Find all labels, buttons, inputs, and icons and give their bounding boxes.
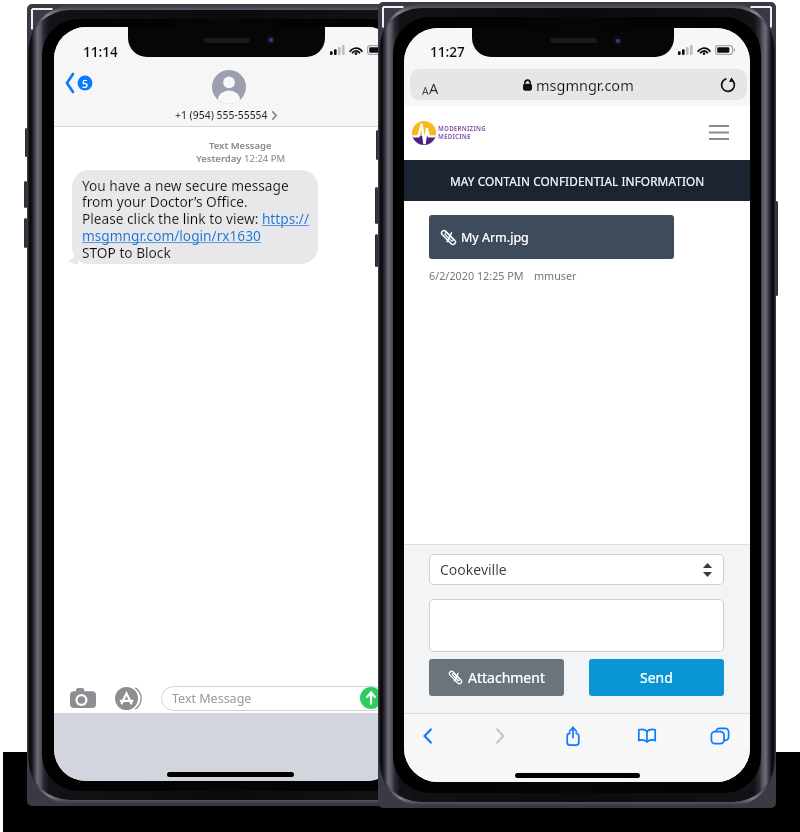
staticText: Yesterday 12:24 PM: [196, 152, 286, 165]
staticText: You have a new secure message from your …: [82, 176, 310, 262]
button[interactable]: Bookmarks: [632, 724, 662, 748]
staticText: 5: [82, 77, 89, 91]
button[interactable]: Camera: [70, 686, 96, 710]
staticText: Attachment: [468, 668, 545, 687]
button[interactable]: Tabs: [705, 724, 735, 748]
staticText: A: [422, 84, 429, 98]
staticText: +1 (954) 555-55554: [175, 108, 268, 122]
button[interactable]: Address bar, msgmngr.com: [410, 69, 747, 100]
button[interactable]: Menu: [704, 118, 734, 144]
button[interactable]: Back: [413, 724, 443, 748]
button[interactable]: Send message: [360, 687, 382, 709]
staticText: Text Message: [172, 690, 252, 707]
staticText: msgmngr.com: [536, 75, 634, 95]
staticText: mmuser: [534, 268, 577, 283]
button[interactable]: App Store: [115, 686, 143, 710]
staticText: Cookeville: [440, 560, 507, 579]
staticText: Send: [640, 668, 673, 687]
button[interactable]: Location: Cookeville: [429, 554, 724, 585]
button[interactable]: Message input: [429, 599, 724, 652]
staticText: 11:27: [430, 43, 465, 61]
button[interactable]: Share: [558, 724, 588, 748]
staticText: A: [429, 78, 439, 98]
staticText: My Arm.jpg: [461, 229, 529, 246]
button[interactable]: Send: [589, 659, 724, 696]
button[interactable]: Forward: [485, 724, 515, 748]
button[interactable]: Attachment: [429, 659, 564, 696]
staticText: Text Message: [209, 139, 272, 152]
staticText: 11:14: [83, 43, 118, 61]
staticText: MODERNIZING: [438, 124, 486, 132]
staticText: MEDICINE: [438, 132, 471, 140]
button[interactable]: Text Message: [161, 686, 386, 711]
staticText: MAY CONTAIN CONFIDENTIAL INFORMATION: [450, 173, 705, 189]
button[interactable]: You have a new secure message from your …: [72, 170, 318, 264]
button[interactable]: My Arm.jpg: [429, 215, 674, 259]
button[interactable]: Back, 5 unread messages: [63, 67, 103, 93]
staticText: 6/2/2020 12:25 PM: [429, 268, 524, 283]
other: Reload page: [720, 77, 736, 93]
